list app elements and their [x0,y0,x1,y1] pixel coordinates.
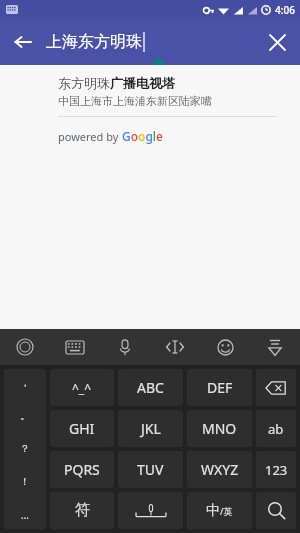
staticText: ab [268,420,284,438]
staticText: 中国上海市上海浦东新区陆家嘴 [58,94,212,108]
button[interactable]: Back [0,19,46,65]
button[interactable]: TUV [118,451,183,488]
staticText: 123 [265,461,288,479]
button[interactable]: Search [256,492,296,529]
staticText: PQRS [64,460,100,479]
button[interactable]: ， [4,369,46,529]
button[interactable]: GHI [50,410,114,447]
button[interactable]: Voice input [100,329,150,365]
button[interactable]: JKL [118,410,183,447]
staticText: DEF [207,378,233,397]
button[interactable]: ABC [118,369,183,406]
button[interactable]: Hide keyboard [250,329,300,365]
staticText: 符 [75,501,90,520]
button[interactable]: 东方明珠广播电视塔 [0,65,300,116]
staticText: JKL [141,419,161,438]
button[interactable]: 中/英 [187,492,252,529]
staticText: ^_^ [72,380,92,396]
staticText: ABC [137,378,164,397]
button[interactable]: 符 [50,492,114,529]
staticText: 4:06 [275,3,295,17]
staticText: ！ [20,475,30,488]
staticText: 上海东方明珠 [46,32,142,52]
staticText: 中/英 [206,502,233,520]
staticText: Google [122,128,163,144]
button[interactable]: Space [118,492,183,529]
staticText: TUV [137,460,164,479]
staticText: powered by [58,129,122,144]
staticText: WXYZ [201,460,239,479]
button[interactable]: IME settings [0,329,50,365]
staticText: ， [20,376,30,389]
button[interactable]: ab [256,410,296,447]
button[interactable]: ^_^ [50,369,114,406]
button[interactable]: Backspace [256,369,296,406]
button[interactable]: MNO [187,410,252,447]
button[interactable]: Keyboard layout [50,329,100,365]
button[interactable]: Clear [254,19,300,65]
button[interactable]: WXYZ [187,451,252,488]
button[interactable]: DEF [187,369,252,406]
button[interactable]: Emoji [200,329,250,365]
staticText: 。 [20,409,30,422]
button[interactable]: Cursor control [150,329,200,365]
button[interactable]: 123 [256,451,296,488]
staticText: … [21,508,29,522]
staticText: MNO [202,419,237,438]
staticText: GHI [69,419,95,438]
staticText: ？ [20,442,30,455]
button[interactable]: PQRS [50,451,114,488]
staticText: 东方明珠广播电视塔 [58,75,175,91]
